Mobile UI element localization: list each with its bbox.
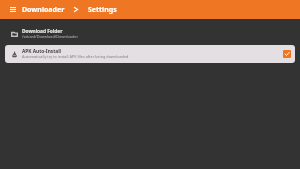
button[interactable]: Downloader (22, 0, 65, 19)
button[interactable]: Download Folder (5, 25, 295, 43)
staticText: Download Folder (22, 28, 63, 35)
button[interactable]: APK Auto-Install (5, 45, 295, 63)
staticText: Automatically try to install APK files a… (22, 54, 129, 59)
staticText: Settings (88, 5, 117, 15)
button[interactable]: APK Auto-Install enabled (283, 50, 291, 58)
button[interactable]: Settings (88, 0, 117, 19)
button[interactable]: Menu (0, 0, 22, 19)
staticText: APK Auto-Install (22, 48, 61, 55)
staticText: Downloader (22, 5, 65, 15)
staticText: /sdcard/Download/Downloader (22, 34, 79, 39)
